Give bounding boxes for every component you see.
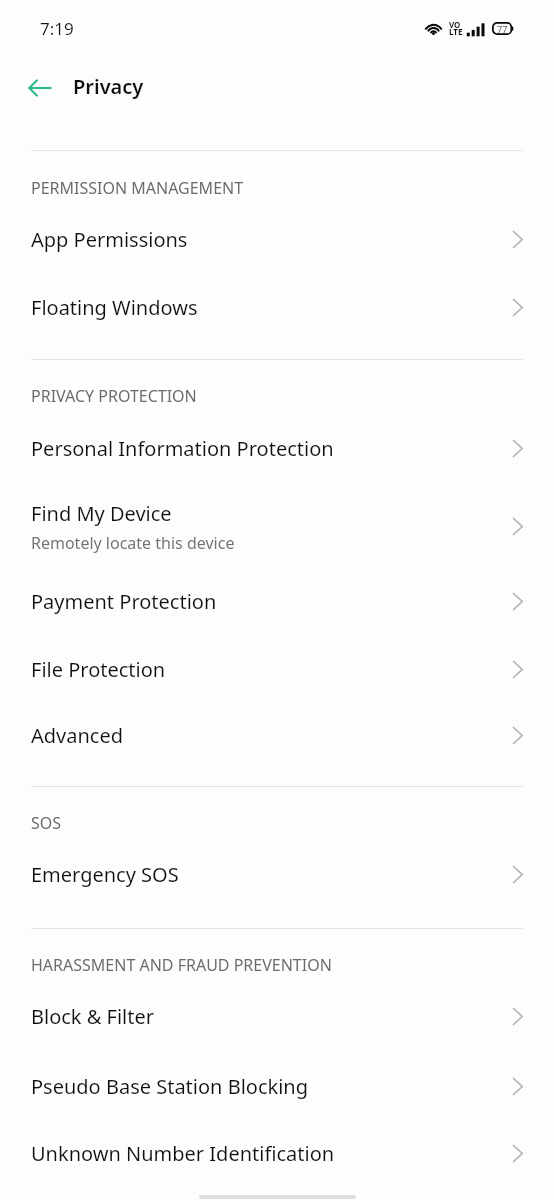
button[interactable]: Payment Protection — [0, 570, 554, 638]
staticText: PRIVACY PROTECTION — [31, 385, 197, 407]
staticText: Floating Windows — [31, 294, 198, 321]
staticText: HARASSMENT AND FRAUD PREVENTION — [31, 954, 332, 976]
button[interactable]: Emergency SOS — [0, 842, 554, 910]
staticText: Pseudo Base Station Blocking — [31, 1073, 309, 1100]
button[interactable]: App Permissions — [0, 207, 554, 275]
staticText: Personal Information Protection — [31, 435, 334, 462]
staticText: LTE — [449, 26, 463, 37]
button[interactable]: File Protection — [0, 638, 554, 703]
staticText: Unknown Number Identification — [31, 1140, 335, 1167]
button[interactable]: Advanced — [0, 703, 554, 771]
staticText: Find My Device — [31, 500, 172, 527]
button[interactable]: Block & Filter — [0, 985, 554, 1054]
staticText: 77 — [497, 23, 508, 35]
staticText: Advanced — [31, 722, 123, 749]
staticText: 7:19 — [40, 17, 74, 40]
other: Cellular signal — [466, 21, 485, 37]
staticText: Block & Filter — [31, 1003, 155, 1030]
button[interactable]: Pseudo Base Station Blocking — [0, 1054, 554, 1121]
staticText: VO — [449, 19, 461, 30]
staticText: Emergency SOS — [31, 861, 179, 888]
staticText: SOS — [31, 812, 62, 834]
button[interactable]: Find My Device — [0, 484, 554, 568]
staticText: App Permissions — [31, 226, 188, 253]
staticText: File Protection — [31, 656, 166, 683]
staticText: Privacy — [73, 73, 144, 100]
other: Battery 77 percent — [492, 22, 514, 35]
staticText: Payment Protection — [31, 588, 217, 615]
staticText: PERMISSION MANAGEMENT — [31, 177, 244, 199]
staticText: Remotely locate this device — [31, 532, 235, 554]
button[interactable]: Back — [16, 64, 64, 112]
button[interactable]: Personal Information Protection — [0, 416, 554, 484]
button[interactable]: Floating Windows — [0, 275, 554, 343]
other: Wi-Fi signal — [425, 21, 442, 36]
button[interactable]: Unknown Number Identification — [0, 1121, 554, 1189]
